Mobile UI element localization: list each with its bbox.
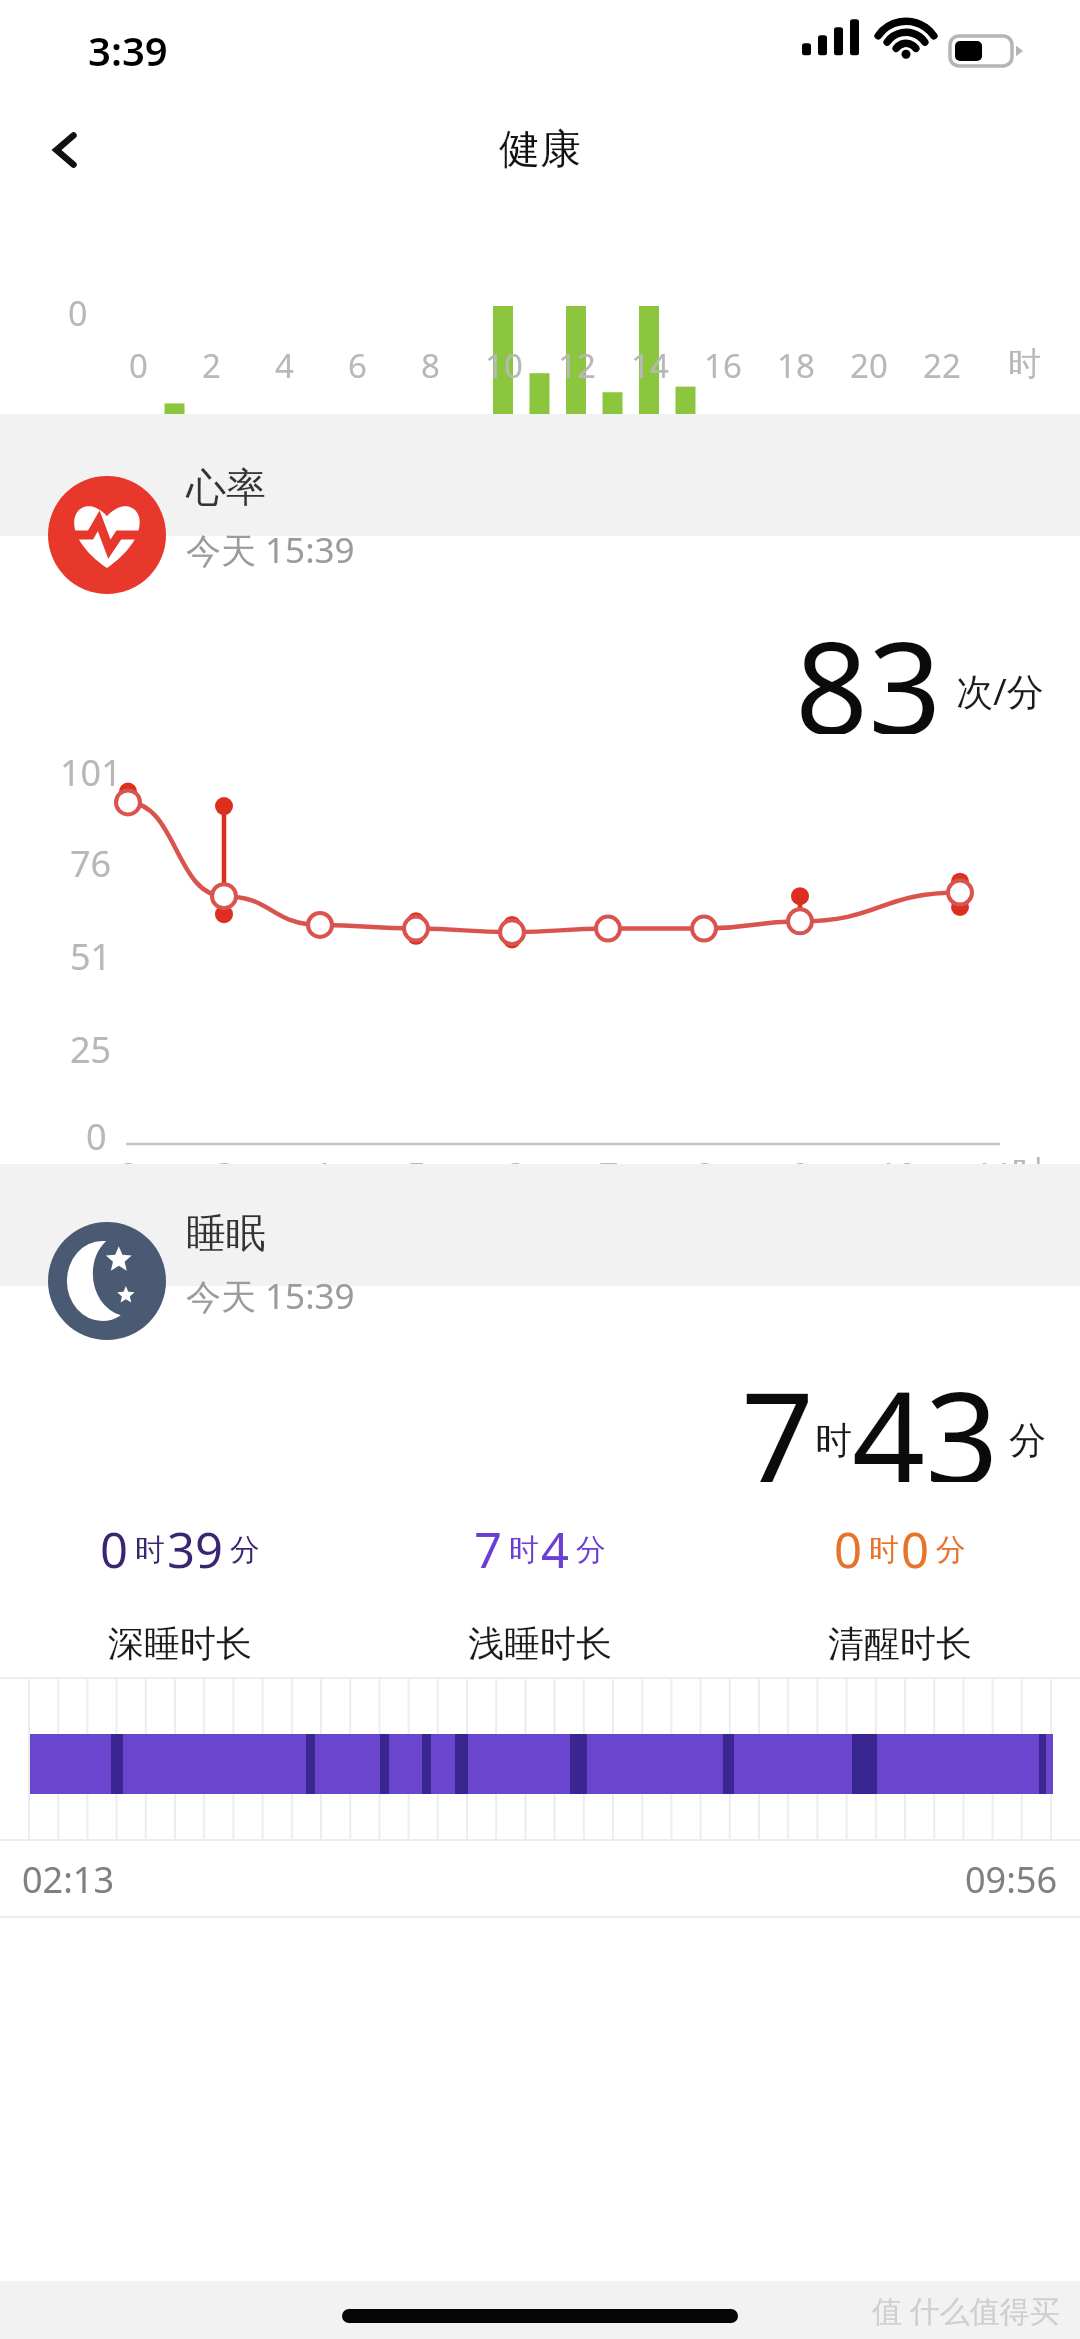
staticText: 0: [86, 1112, 107, 1161]
staticText: 7: [741, 1348, 815, 1482]
staticText: 3:39: [88, 23, 168, 77]
staticText: 心率: [186, 462, 266, 512]
staticText: 清醒时长: [828, 1621, 972, 1666]
staticText: 0: [68, 290, 88, 336]
staticText: 次/分: [956, 665, 1044, 716]
staticText: 0: [129, 343, 148, 388]
staticText: 时: [1008, 343, 1041, 385]
staticText: 4: [275, 343, 294, 388]
staticText: 16: [704, 343, 742, 388]
staticText: 7: [599, 1152, 619, 1198]
staticText: 7: [474, 1516, 503, 1583]
staticText: 浅睡时长: [468, 1621, 612, 1666]
staticText: 睡眠: [186, 1208, 266, 1258]
staticText: 时: [1012, 1152, 1046, 1195]
staticText: 值 什么值得买: [872, 2290, 1060, 2331]
staticText: 83: [795, 598, 942, 734]
staticText: 22: [923, 343, 961, 388]
button[interactable]: 睡眠: [0, 1164, 1080, 1348]
staticText: 10: [878, 1152, 917, 1198]
staticText: 39: [167, 1516, 224, 1583]
staticText: 分: [936, 1531, 966, 1569]
staticText: 0: [901, 1516, 930, 1583]
staticText: 今天 15:39: [186, 1272, 355, 1320]
staticText: 9: [791, 1152, 811, 1198]
staticText: 时: [509, 1531, 539, 1569]
staticText: 时: [135, 1531, 165, 1569]
staticText: 43: [852, 1348, 999, 1482]
staticText: 14: [631, 343, 669, 388]
button[interactable]: 7: [360, 1516, 720, 1666]
staticText: 5: [407, 1152, 427, 1198]
staticText: 8: [421, 343, 440, 388]
staticText: 101: [60, 748, 122, 797]
staticText: 分: [576, 1531, 606, 1569]
staticText: 分: [230, 1531, 260, 1569]
staticText: 4: [311, 1152, 331, 1198]
staticText: 18: [777, 343, 815, 388]
staticText: 时: [869, 1531, 899, 1569]
staticText: 51: [70, 932, 112, 981]
staticText: 10: [485, 343, 523, 388]
staticText: 02:13: [22, 1855, 115, 1904]
staticText: 11: [974, 1152, 1013, 1198]
staticText: 76: [70, 839, 112, 888]
staticText: 12: [558, 343, 596, 388]
staticText: 分: [1009, 1417, 1046, 1464]
button[interactable]: 心率: [0, 414, 1080, 598]
staticText: 时: [815, 1417, 852, 1464]
staticText: 0: [834, 1516, 863, 1583]
staticText: 6: [348, 343, 367, 388]
staticText: 6: [503, 1152, 523, 1198]
staticText: 20: [850, 343, 888, 388]
staticText: 今天 15:39: [186, 526, 355, 574]
staticText: 2: [202, 343, 221, 388]
button[interactable]: 0: [720, 1516, 1080, 1666]
staticText: 8: [695, 1152, 715, 1198]
button[interactable]: 0: [0, 1516, 360, 1666]
staticText: 健康: [499, 124, 581, 176]
staticText: 3: [215, 1152, 235, 1198]
button[interactable]: Back: [28, 112, 104, 188]
staticText: 0: [100, 1516, 129, 1583]
staticText: 2: [119, 1152, 139, 1198]
staticText: 09:56: [965, 1855, 1058, 1904]
staticText: 25: [70, 1025, 112, 1074]
staticText: 4: [541, 1516, 570, 1583]
staticText: 深睡时长: [108, 1621, 252, 1666]
